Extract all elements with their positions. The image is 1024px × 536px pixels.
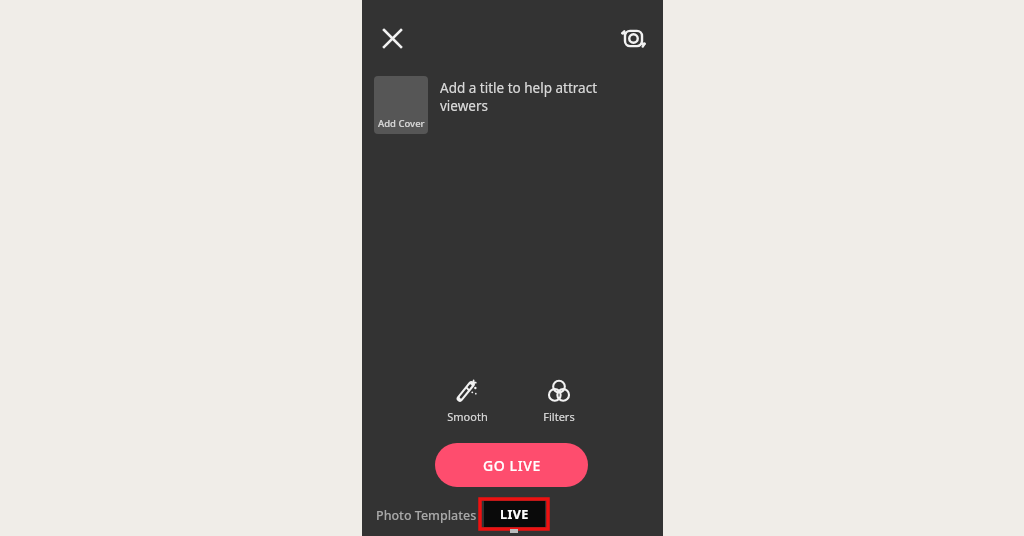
staticText: Add Cover [378,117,425,130]
staticText: Add a title to help attract viewers [440,79,639,115]
button[interactable]: Add Cover [374,76,639,134]
staticText: Photo Templates [376,507,477,524]
staticText: Smooth [447,409,488,424]
button[interactable]: GO LIVE [435,443,588,487]
button[interactable]: Close [370,16,414,60]
staticText: GO LIVE [483,456,541,475]
staticText: LIVE [500,506,529,523]
button[interactable]: LIVE [484,501,545,527]
button[interactable]: Photo Templates [376,500,477,530]
button[interactable]: Filters [526,376,592,426]
staticText: Filters [543,409,575,424]
button[interactable]: Smooth [434,376,500,426]
button[interactable]: Flip camera [611,16,655,60]
